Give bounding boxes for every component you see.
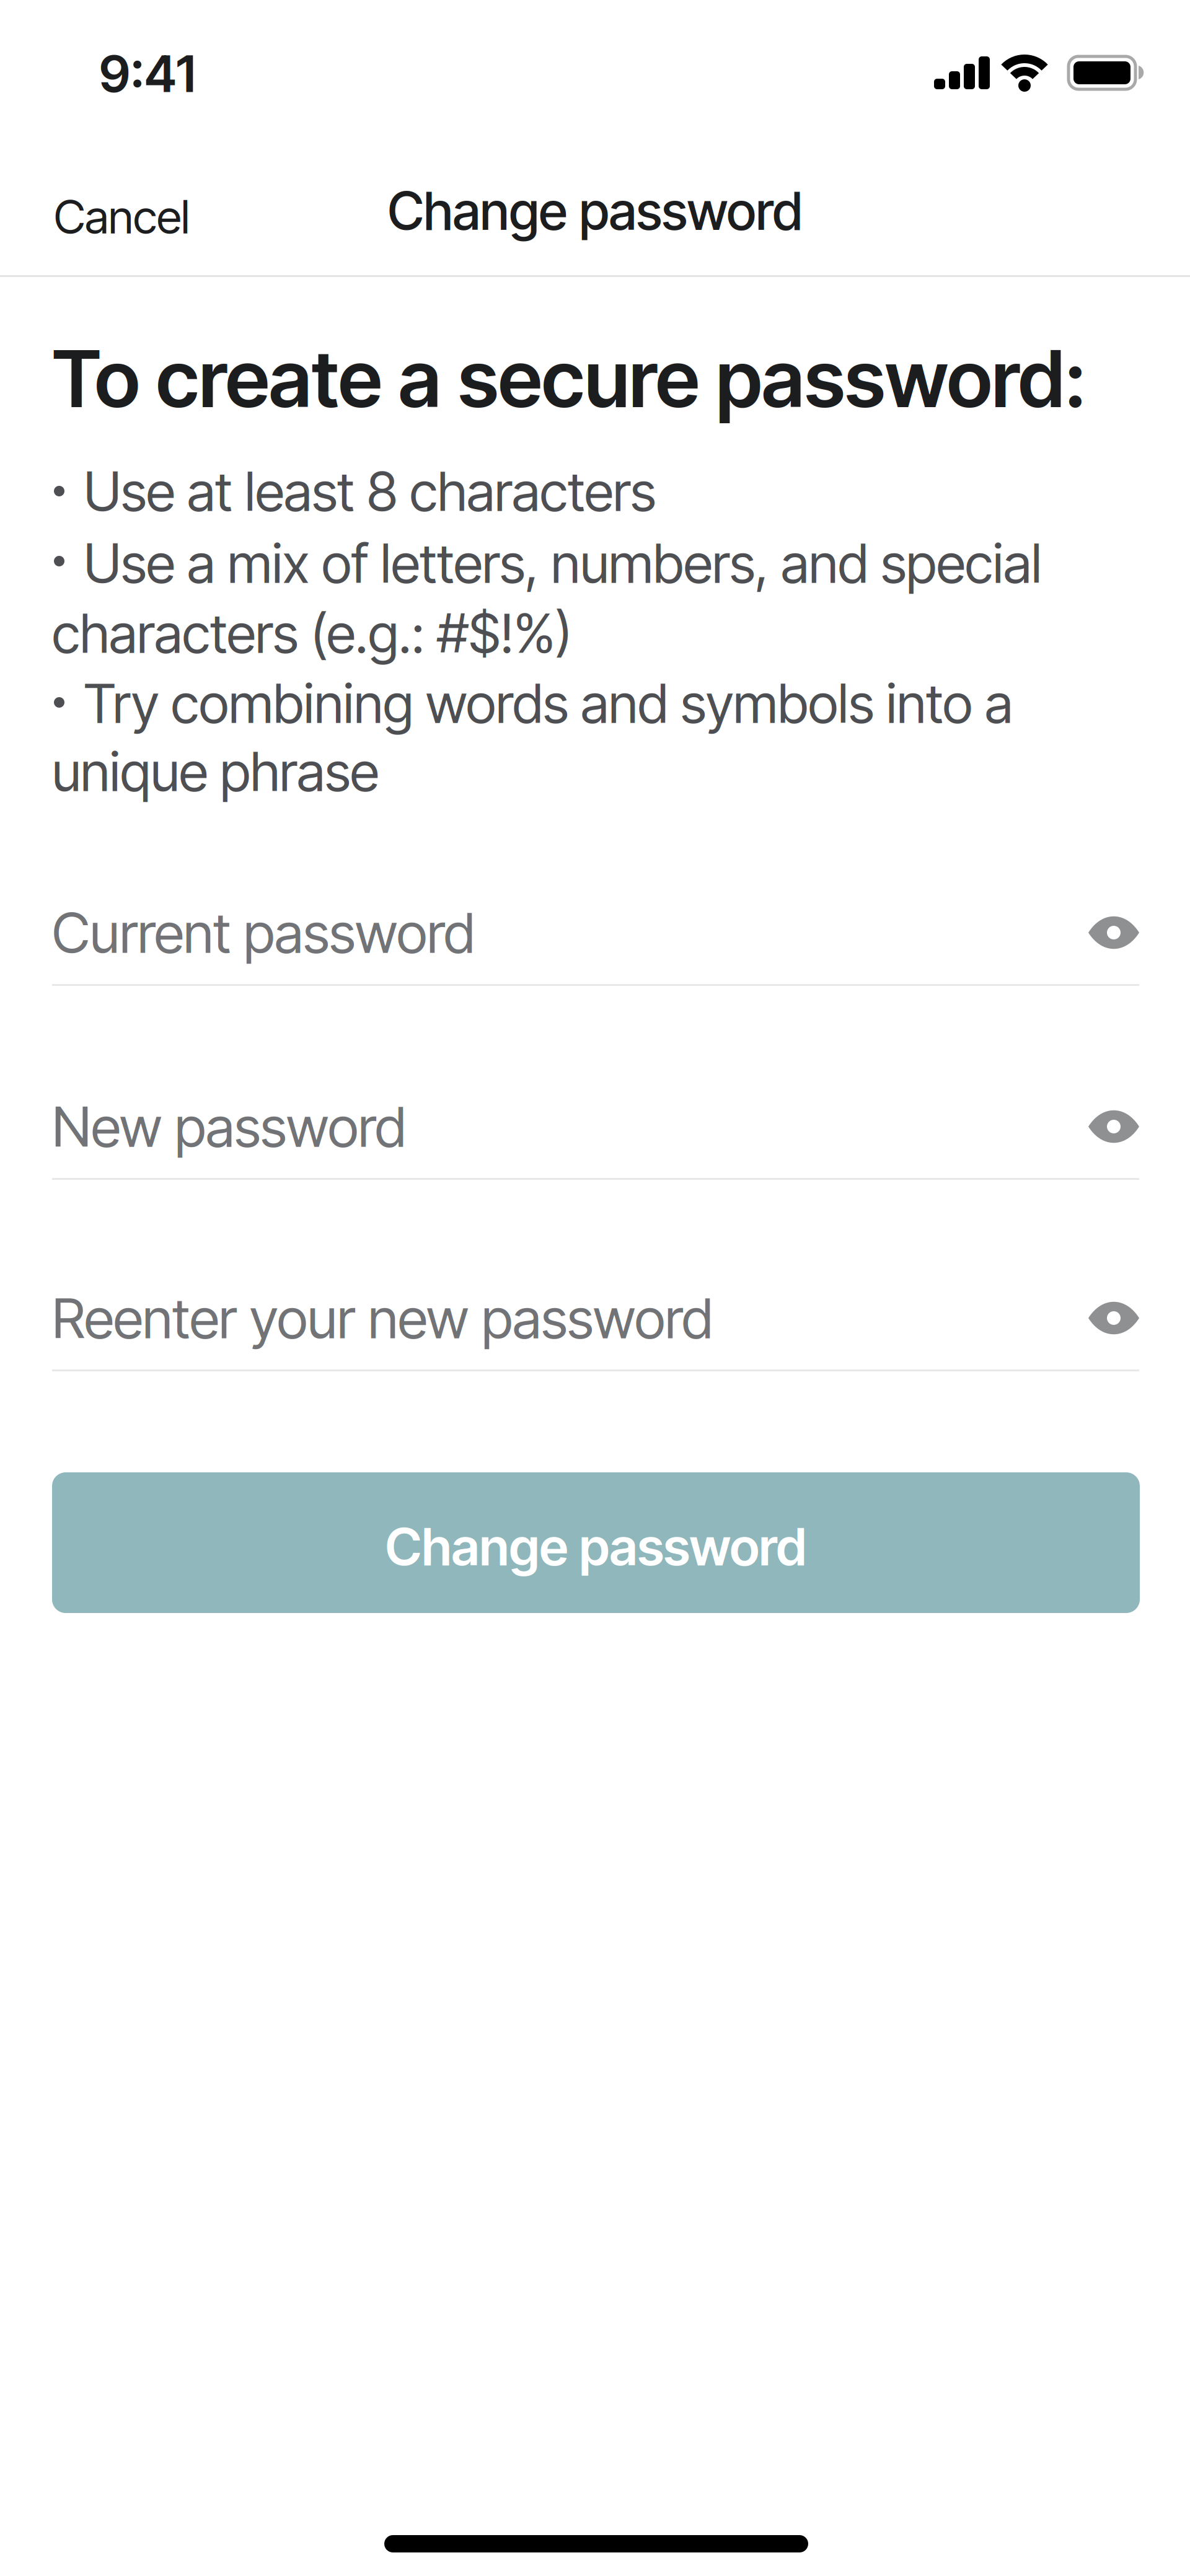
staticText: characters (e.g.: #$!%)	[52, 600, 572, 666]
staticText: 9:41	[99, 43, 196, 104]
button[interactable]: Cancel	[54, 189, 190, 244]
button[interactable]: Show password	[1088, 1302, 1139, 1334]
staticText: Reenter your new password	[52, 1285, 713, 1351]
staticText: Use a mix of letters, numbers, and speci…	[84, 530, 1042, 596]
staticText: unique phrase	[52, 739, 379, 804]
button[interactable]: Reenter your new password	[52, 1285, 1139, 1371]
staticText: Change password	[388, 179, 802, 242]
staticText: To create a secure password:	[52, 331, 1086, 426]
button[interactable]: Show password	[1088, 917, 1139, 949]
button[interactable]: New password	[52, 1093, 1139, 1180]
staticText: Change password	[385, 1515, 807, 1578]
staticText: Cancel	[54, 189, 190, 244]
staticText: Current password	[52, 899, 475, 966]
staticText: Try combining words and symbols into a	[84, 670, 1013, 736]
button[interactable]: Change password	[52, 1472, 1140, 1613]
staticText: New password	[52, 1093, 406, 1160]
button[interactable]: Show password	[1088, 1110, 1139, 1143]
staticText: Use at least 8 characters	[84, 459, 656, 524]
button[interactable]: Current password	[52, 899, 1139, 986]
